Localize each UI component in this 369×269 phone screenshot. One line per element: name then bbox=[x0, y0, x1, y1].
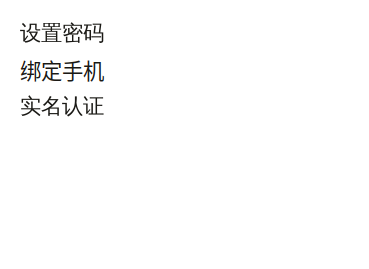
staticText: 绑定手机 bbox=[20, 54, 104, 85]
staticText: 设置密码 bbox=[20, 20, 104, 46]
staticText: 实名认证 bbox=[20, 93, 104, 119]
